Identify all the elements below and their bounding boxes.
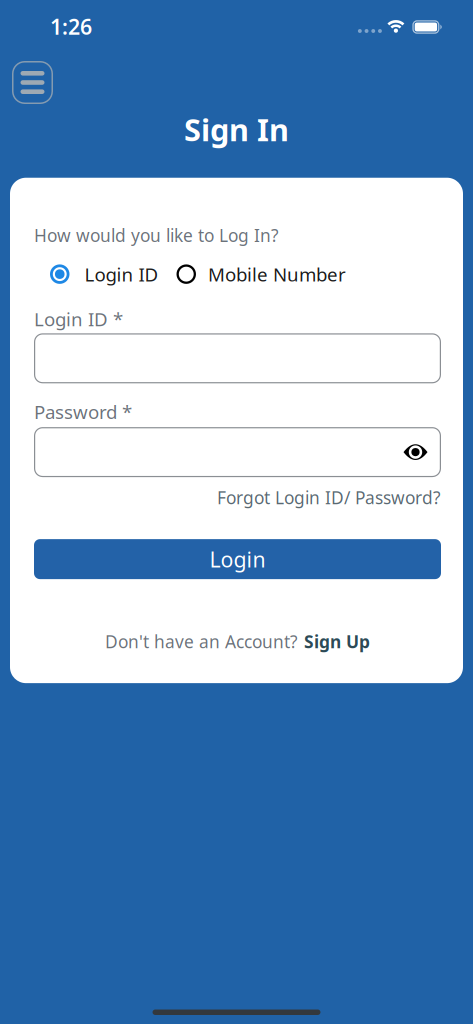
button[interactable]: Login [34,539,441,579]
staticText: Password * [34,399,132,424]
button[interactable]: Sign Up [304,630,370,653]
staticText: Login ID * [34,306,123,331]
button[interactable]: Forgot Login ID/ Password? [217,486,441,509]
staticText: Sign In [184,109,289,150]
staticText: Sign Up [304,630,370,653]
button[interactable]: Show password [403,444,427,460]
button[interactable]: Menu [12,61,53,104]
staticText: Login [209,545,265,573]
staticText: Don't have an Account? [105,630,298,653]
staticText: Mobile Number [208,262,346,286]
staticText: Login ID [84,262,158,286]
button[interactable]: Mobile Number [176,262,346,286]
button[interactable]: Login ID [50,262,158,286]
staticText: Forgot Login ID/ Password? [217,486,441,509]
staticText: How would you like to Log In? [34,224,279,247]
staticText: 1:26 [50,12,92,41]
